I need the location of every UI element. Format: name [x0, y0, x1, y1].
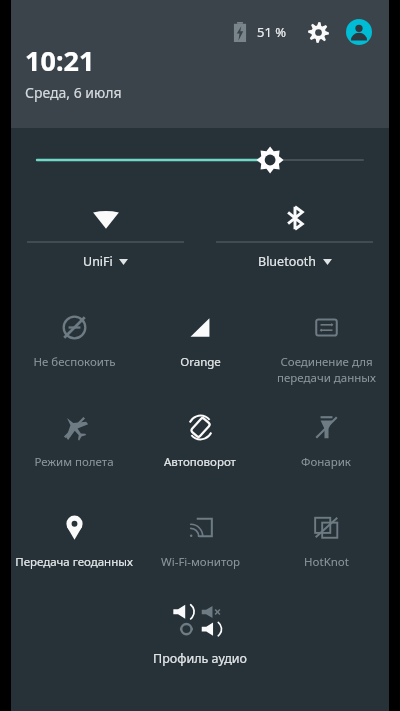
staticText: Не беспокоить: [33, 354, 116, 370]
staticText: Bluetooth: [258, 253, 317, 270]
staticText: Режим полета: [34, 454, 114, 470]
button[interactable]: Wi-Fi-монитор: [137, 498, 263, 570]
button[interactable]: UniFi: [11, 192, 200, 270]
staticText: HotKnot: [304, 554, 349, 570]
staticText: Соединение для передачи данных: [277, 354, 376, 385]
button[interactable]: Соединение для передачи данных: [263, 298, 389, 385]
button[interactable]: User profile: [343, 16, 375, 48]
button[interactable]: Не беспокоить: [11, 298, 137, 370]
button[interactable]: Профиль аудио: [11, 603, 389, 667]
button[interactable]: Фонарик: [263, 398, 389, 470]
staticText: Профиль аудио: [153, 650, 247, 667]
staticText: Среда, 6 июля: [25, 83, 122, 102]
staticText: Orange: [180, 354, 221, 370]
staticText: UniFi: [83, 253, 113, 270]
button[interactable]: Передача геоданных: [11, 498, 137, 570]
staticText: 51 %: [257, 23, 287, 41]
staticText: Фонарик: [301, 454, 351, 470]
button[interactable]: Режим полета: [11, 398, 137, 470]
button[interactable]: Settings: [303, 17, 333, 47]
button[interactable]: HotKnot: [263, 498, 389, 570]
button[interactable]: [11, 128, 389, 192]
staticText: Wi-Fi-монитор: [161, 554, 240, 570]
button[interactable]: Автоповорот: [137, 398, 263, 470]
staticText: Автоповорот: [164, 454, 236, 470]
button[interactable]: Orange: [137, 298, 263, 370]
staticText: Передача геоданных: [15, 554, 133, 570]
staticText: 10:21: [25, 42, 95, 79]
button[interactable]: Bluetooth: [200, 192, 389, 270]
